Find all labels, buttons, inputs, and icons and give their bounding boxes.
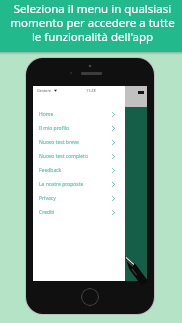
button[interactable]: Crediti xyxy=(33,205,125,219)
staticText: Crediti xyxy=(39,209,55,216)
staticText: Nuovo test breve xyxy=(39,139,79,146)
staticText: Le nostre proposte xyxy=(39,181,84,188)
staticText: Feedback xyxy=(39,167,62,174)
button[interactable]: Le nostre proposte xyxy=(33,177,125,191)
button[interactable]: Nuovo test breve xyxy=(33,135,125,149)
staticText: Seleziona il menu in qualsiasi momento p… xyxy=(10,1,175,44)
button[interactable]: Privacy xyxy=(33,191,125,205)
button[interactable]: Nuovo test completo xyxy=(33,149,125,163)
button[interactable]: Il mio profilo xyxy=(33,121,125,135)
staticText: Privacy xyxy=(39,195,56,202)
staticText: Gestore xyxy=(37,88,52,93)
staticText: 11:28 xyxy=(86,88,96,93)
staticText: Home xyxy=(39,111,54,118)
staticText: Il mio profilo xyxy=(39,125,69,132)
button[interactable]: Feedback xyxy=(33,163,125,177)
staticText: Nuovo test completo xyxy=(39,153,88,160)
button[interactable]: Home xyxy=(33,107,125,121)
